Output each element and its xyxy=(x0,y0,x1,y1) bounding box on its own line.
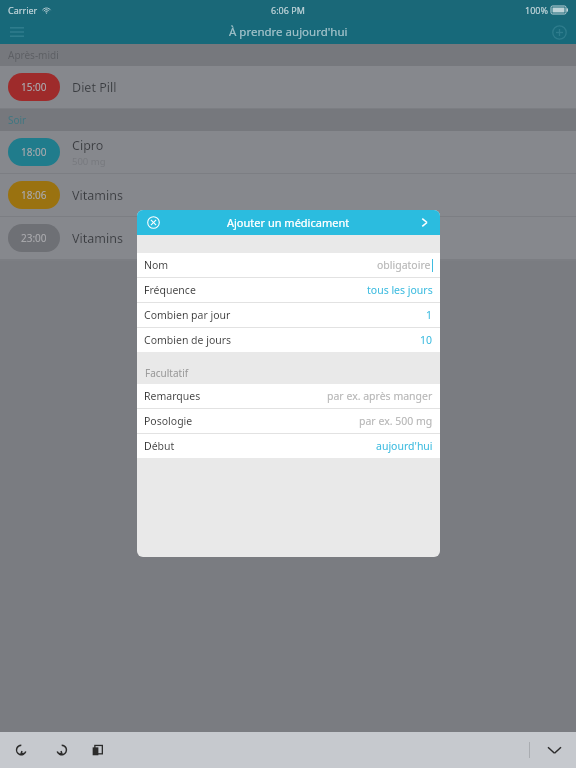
staticText: Carrier xyxy=(8,4,38,16)
staticText: 1 xyxy=(426,308,433,322)
staticText: Cipro xyxy=(72,137,104,154)
button[interactable]: Combien de jours xyxy=(137,328,440,352)
staticText: 6:06 PM xyxy=(271,4,305,16)
staticText: 100% xyxy=(525,4,548,16)
button[interactable]: 23:00 xyxy=(0,217,576,259)
staticText: À prendre aujourd'hui xyxy=(229,24,348,40)
button[interactable]: Nom xyxy=(137,253,440,277)
staticText: par ex. 500 mg xyxy=(359,414,433,428)
staticText: Posologie xyxy=(144,414,193,428)
staticText: Début xyxy=(144,439,175,453)
staticText: Ajouter un médicament xyxy=(227,215,350,230)
staticText: 500 mg xyxy=(72,155,106,168)
staticText: Après-midi xyxy=(8,48,59,62)
staticText: Diet Pill xyxy=(72,79,117,96)
staticText: Facultatif xyxy=(145,366,189,380)
button[interactable]: Redo xyxy=(47,737,73,763)
button[interactable]: Menu xyxy=(0,20,34,44)
staticText: Combien de jours xyxy=(144,333,232,347)
button[interactable]: 18:00 xyxy=(0,131,576,173)
button[interactable]: Undo xyxy=(10,737,36,763)
button[interactable]: Close xyxy=(137,210,169,235)
button[interactable]: Combien par jour xyxy=(137,303,440,327)
button[interactable]: Next xyxy=(408,210,440,235)
button[interactable]: Hide keyboard xyxy=(542,738,566,762)
staticText: 23:00 xyxy=(21,231,47,245)
staticText: obligatoire xyxy=(377,258,431,272)
staticText: Vitamins xyxy=(72,230,123,247)
button[interactable]: Remarques xyxy=(137,384,440,408)
staticText: 15:00 xyxy=(21,80,47,94)
staticText: par ex. après manger xyxy=(327,389,433,403)
staticText: Combien par jour xyxy=(144,308,231,322)
button[interactable]: Fréquence xyxy=(137,278,440,302)
staticText: Fréquence xyxy=(144,283,196,297)
staticText: 10 xyxy=(420,333,433,347)
button[interactable]: Add medication xyxy=(542,20,576,44)
button[interactable]: Début xyxy=(137,434,440,458)
button[interactable]: 18:06 xyxy=(0,174,576,216)
staticText: 18:00 xyxy=(21,145,47,159)
button[interactable]: Paste xyxy=(84,737,110,763)
staticText: 18:06 xyxy=(21,188,47,202)
staticText: aujourd'hui xyxy=(376,439,433,453)
button[interactable]: Posologie xyxy=(137,409,440,433)
staticText: Soir xyxy=(8,113,27,127)
staticText: Nom xyxy=(144,258,169,272)
button[interactable]: 15:00 xyxy=(0,66,576,108)
staticText: tous les jours xyxy=(367,283,433,297)
staticText: Vitamins xyxy=(72,187,123,204)
staticText: Remarques xyxy=(144,389,201,403)
